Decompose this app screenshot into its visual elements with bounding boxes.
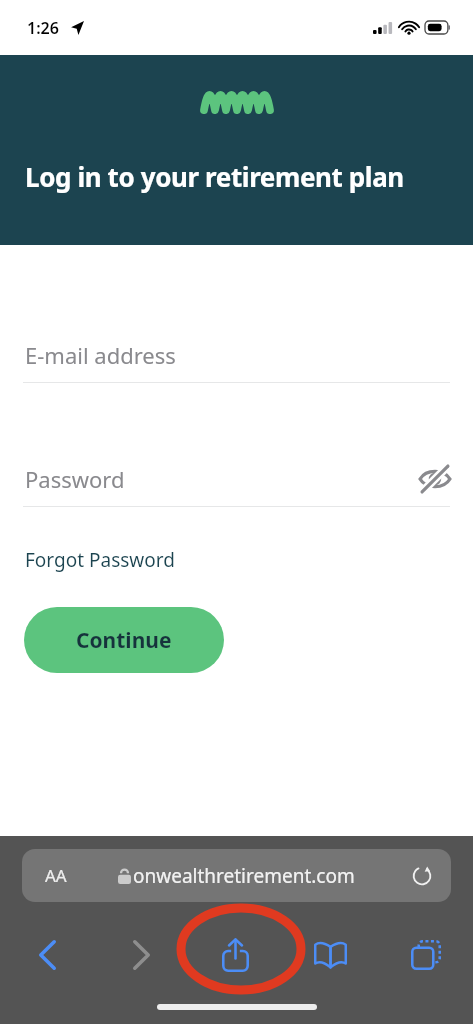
button[interactable]: Bookmarks (283, 918, 378, 992)
button[interactable]: Tabs (378, 918, 473, 992)
staticText: Continue (76, 626, 172, 655)
button[interactable]: Show password (415, 459, 455, 499)
button[interactable]: Share (188, 918, 283, 992)
button[interactable]: AA (22, 849, 451, 902)
staticText: Password (25, 464, 125, 494)
button[interactable]: Reload (405, 859, 439, 893)
staticText: Forgot Password (25, 547, 175, 573)
button[interactable]: Password (0, 452, 473, 506)
staticText: Log in to your retirement plan (25, 159, 404, 194)
button[interactable]: Forgot Password (25, 547, 175, 573)
button[interactable]: E-mail address (0, 328, 473, 382)
staticText: 1:26 (27, 17, 59, 39)
button[interactable]: Forward (94, 918, 188, 992)
staticText: onwealthretirement.com (133, 863, 355, 889)
button[interactable]: Back (0, 918, 94, 992)
staticText: E-mail address (25, 340, 176, 370)
staticText: AA (45, 864, 67, 887)
button[interactable]: Continue (24, 607, 224, 673)
